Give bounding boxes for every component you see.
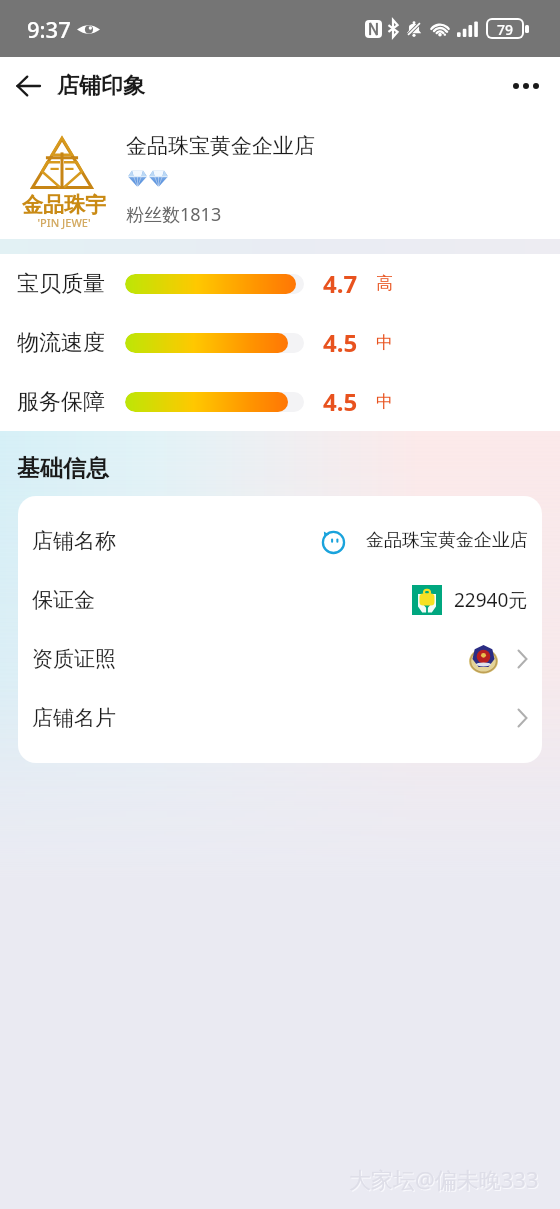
- staticText: 金品珠宝黄金企业店: [366, 529, 528, 552]
- staticText: 4.7: [323, 267, 358, 300]
- staticText: 4.5: [323, 326, 358, 359]
- staticText: 'PIN JEWE': [37, 215, 91, 230]
- staticText: 物流速度: [17, 329, 105, 357]
- staticText: 粉丝数1813: [126, 202, 222, 227]
- button[interactable]: More options: [497, 57, 555, 114]
- staticText: 金品珠宇: [22, 192, 106, 218]
- staticText: 9:37: [27, 14, 71, 44]
- staticText: 22940元: [454, 587, 528, 613]
- staticText: 资质证照: [32, 646, 116, 672]
- staticText: 宝贝质量: [17, 270, 105, 298]
- staticText: 4.5: [323, 385, 358, 418]
- staticText: 高: [376, 273, 393, 294]
- staticText: 店铺印象: [57, 72, 145, 100]
- staticText: 基础信息: [17, 454, 109, 483]
- button[interactable]: 保证金: [18, 570, 542, 629]
- staticText: 大家坛@偏未晚333: [349, 1164, 539, 1194]
- staticText: 79: [497, 20, 514, 37]
- button[interactable]: Back: [0, 57, 57, 114]
- button[interactable]: 资质证照: [18, 629, 542, 688]
- staticText: 保证金: [32, 587, 95, 613]
- staticText: 金品珠宝黄金企业店: [126, 133, 315, 159]
- staticText: 店铺名片: [32, 705, 116, 731]
- button[interactable]: 店铺名称: [18, 511, 542, 570]
- staticText: 中: [376, 391, 393, 412]
- button[interactable]: 店铺名片: [18, 688, 542, 747]
- staticText: 大家坛@偏未晚333: [350, 1165, 540, 1195]
- staticText: 店铺名称: [32, 528, 116, 554]
- staticText: 中: [376, 332, 393, 353]
- staticText: 服务保障: [17, 388, 105, 416]
